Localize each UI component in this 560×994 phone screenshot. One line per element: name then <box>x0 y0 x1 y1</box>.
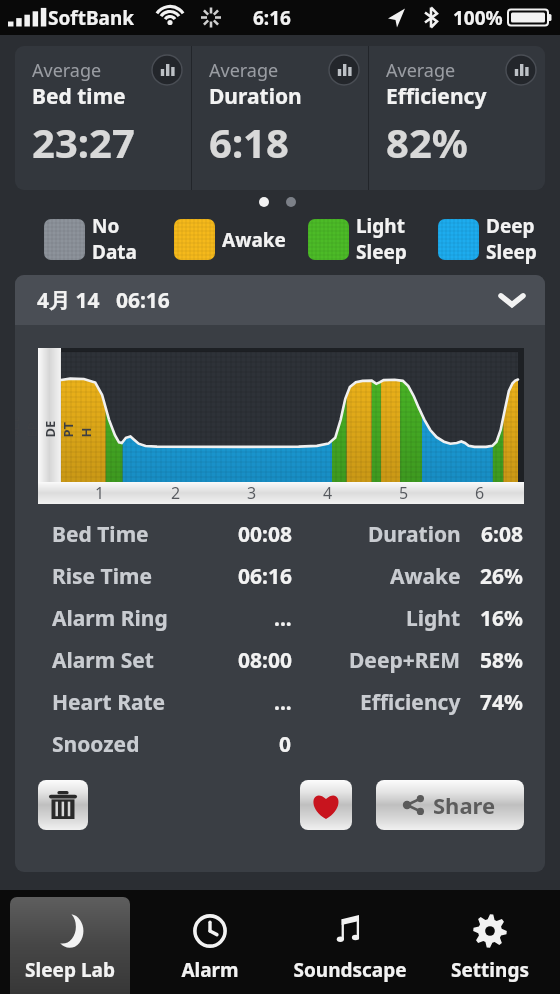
staticText: 58% <box>480 646 523 675</box>
staticText: 23:27 <box>32 115 135 169</box>
staticText: Rise Time <box>52 562 182 591</box>
staticText: 26% <box>480 562 523 591</box>
button[interactable]: Settings <box>430 897 550 994</box>
button[interactable]: Delete <box>38 780 88 830</box>
staticText: Snoozed <box>52 730 182 759</box>
staticText: 6:08 <box>481 520 523 549</box>
staticText: 0 <box>279 730 292 759</box>
staticText: Average <box>386 58 456 83</box>
staticText: Light <box>406 604 461 633</box>
staticText: ... <box>274 604 292 633</box>
button[interactable]: Sleep Lab <box>10 897 130 994</box>
staticText: 4 <box>323 482 333 504</box>
staticText: Bed Time <box>52 520 182 549</box>
button[interactable]: Collapse <box>499 287 525 313</box>
button[interactable]: Show Duration chart <box>329 55 359 85</box>
staticText: 16% <box>480 604 523 633</box>
staticText: 5 <box>399 482 409 504</box>
staticText: Deep <box>486 213 535 239</box>
staticText: 3 <box>247 482 257 504</box>
button[interactable]: Soundscape <box>290 897 410 994</box>
staticText: Deep+REM <box>349 646 461 675</box>
staticText: 6:18 <box>209 115 289 169</box>
staticText: 100% <box>453 5 503 31</box>
staticText: 08:00 <box>238 646 292 675</box>
staticText: Duration <box>209 82 302 111</box>
staticText: 06:16 <box>238 562 292 591</box>
button[interactable]: Show Bed time chart <box>152 55 182 85</box>
staticText: Sleep Lab <box>25 957 115 983</box>
staticText: Heart Rate <box>52 688 182 717</box>
staticText: Settings <box>451 957 529 983</box>
staticText: Sleep <box>356 239 407 265</box>
button[interactable]: Average <box>192 46 368 190</box>
staticText: ... <box>274 688 292 717</box>
staticText: 6:16 <box>253 5 291 31</box>
staticText: No <box>92 213 120 239</box>
staticText: Share <box>433 790 496 820</box>
staticText: Duration <box>368 520 461 549</box>
staticText: Data <box>92 239 137 265</box>
button[interactable]: Alarm <box>150 897 270 994</box>
staticText: Alarm Set <box>52 646 182 675</box>
staticText: SLEEP DEPTH <box>15 414 94 437</box>
staticText: Sleep <box>486 239 537 265</box>
staticText: Awake <box>222 227 286 253</box>
staticText: Awake <box>390 562 461 591</box>
staticText: Efficiency <box>360 688 461 717</box>
staticText: 82% <box>386 115 468 169</box>
staticText: 2 <box>171 482 181 504</box>
button[interactable]: Average <box>15 46 191 190</box>
staticText: 00:08 <box>238 520 292 549</box>
button[interactable]: Favorite <box>300 780 352 830</box>
staticText: 74% <box>480 688 523 717</box>
button[interactable]: Share <box>376 780 524 830</box>
staticText: Soundscape <box>293 957 407 983</box>
staticText: Alarm Ring <box>52 604 182 633</box>
staticText: Efficiency <box>386 82 487 111</box>
staticText: 6 <box>475 482 485 504</box>
button[interactable]: Show Efficiency chart <box>506 55 536 85</box>
button[interactable]: Average <box>369 46 545 190</box>
staticText: Light <box>356 213 405 239</box>
button[interactable]: 4月 14 06:16 <box>15 275 545 325</box>
staticText: Average <box>209 58 279 83</box>
staticText: SoftBank <box>48 5 135 31</box>
staticText: 1 <box>95 482 105 504</box>
staticText: Alarm <box>181 957 239 983</box>
staticText: 4月 14 06:16 <box>37 286 170 315</box>
staticText: Bed time <box>32 82 126 111</box>
staticText: Average <box>32 58 102 83</box>
